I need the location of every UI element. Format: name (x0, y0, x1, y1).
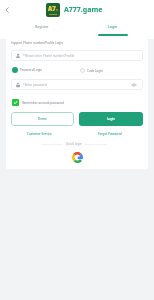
button[interactable]: Code Login (79, 68, 103, 73)
staticText: Support Phone number/Profile Login (11, 41, 64, 45)
staticText: Password Login (20, 68, 43, 72)
button[interactable]: Register (6, 19, 77, 36)
staticText: Quick login (66, 142, 82, 146)
button[interactable]: Login (79, 112, 143, 126)
button[interactable]: Sign in with Google (70, 150, 84, 164)
staticText: Remember account password (22, 101, 64, 105)
staticText: A777.game (64, 5, 103, 15)
button[interactable]: Forgot Password (98, 132, 122, 136)
button[interactable]: Customer Service (27, 132, 52, 136)
button[interactable]: Remember account password (11, 99, 64, 106)
staticText: Login (108, 24, 118, 29)
staticText: Register (35, 24, 49, 29)
button[interactable]: Back (0, 3, 13, 16)
staticText: A7 (48, 5, 56, 13)
button[interactable]: Login (77, 19, 148, 36)
other: Show password (131, 82, 137, 88)
staticText: Customer Service (27, 132, 52, 136)
staticText: *Please enter Phone number/Profile (23, 54, 75, 58)
staticText: Forgot Password (98, 132, 122, 136)
button[interactable]: Demo (11, 112, 74, 126)
staticText: Login (107, 117, 115, 121)
staticText: Demo (38, 117, 47, 121)
staticText: Code Login (87, 69, 103, 73)
staticText: *Enter password (23, 83, 47, 87)
button[interactable]: *Please enter Phone number/Profile (11, 50, 143, 61)
button[interactable]: Password Login (11, 67, 43, 73)
button[interactable]: *Enter password (11, 79, 143, 90)
